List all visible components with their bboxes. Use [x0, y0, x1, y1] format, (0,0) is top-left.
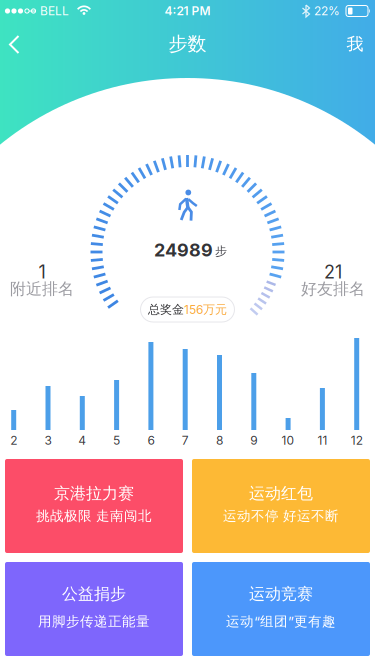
- staticText: 运动红包: [249, 483, 313, 504]
- staticText: 附近排名: [10, 279, 74, 299]
- button[interactable]: 京港拉力赛: [5, 459, 183, 553]
- button[interactable]: [0, 0, 44, 44]
- staticText: 22%: [314, 3, 340, 18]
- staticText: 24989: [154, 239, 213, 261]
- staticText: 公益捐步: [62, 584, 126, 604]
- staticText: 步数: [168, 32, 206, 56]
- staticText: 步: [215, 244, 227, 259]
- staticText: 2: [10, 433, 17, 447]
- staticText: 4:21 PM: [164, 3, 210, 18]
- staticText: 5: [113, 433, 120, 447]
- staticText: 12: [351, 433, 363, 447]
- button[interactable]: 运动竞赛: [192, 562, 370, 656]
- button[interactable]: 总奖金: [140, 297, 234, 322]
- staticText: 总奖金: [148, 302, 184, 317]
- staticText: 7: [182, 433, 189, 447]
- staticText: 9: [250, 433, 257, 447]
- staticText: 运动“组团”更有趣: [226, 613, 336, 630]
- staticText: 8: [216, 433, 223, 447]
- staticText: BELL: [40, 3, 69, 18]
- staticText: 好友排名: [301, 279, 365, 299]
- staticText: 1: [38, 261, 45, 283]
- staticText: 京港拉力赛: [54, 483, 134, 504]
- button[interactable]: 我: [335, 29, 375, 59]
- staticText: 运动竞赛: [249, 584, 313, 604]
- staticText: 挑战极限 走南闯北: [36, 508, 152, 525]
- staticText: 156万元: [184, 302, 227, 317]
- staticText: 10: [282, 433, 295, 447]
- staticText: 21: [324, 261, 342, 283]
- staticText: 用脚步传递正能量: [38, 613, 150, 630]
- staticText: 4: [78, 433, 86, 447]
- button[interactable]: 运动红包: [192, 459, 370, 553]
- staticText: 我: [346, 33, 363, 55]
- staticText: 11: [317, 433, 327, 447]
- staticText: 运动不停 好运不断: [223, 508, 339, 525]
- button[interactable]: 公益捐步: [5, 562, 183, 656]
- staticText: 3: [44, 433, 51, 447]
- staticText: 6: [147, 433, 154, 447]
